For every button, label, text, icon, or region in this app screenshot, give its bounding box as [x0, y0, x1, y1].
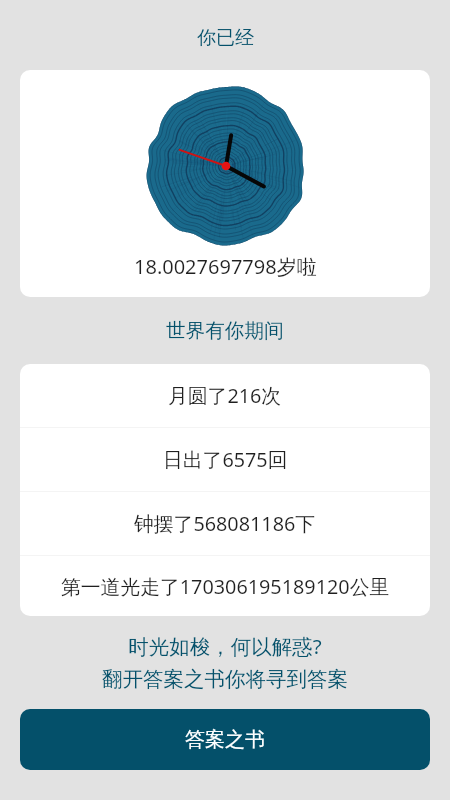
button[interactable]: 日出了6575回	[20, 428, 430, 491]
staticText: 答案之书	[185, 727, 265, 752]
staticText: 时光如梭，何以解惑? 翻开答案之书你将寻到答案	[102, 632, 348, 692]
other: 年轮时钟	[146, 86, 306, 246]
button[interactable]: 第一道光走了170306195189120公里	[20, 556, 430, 616]
staticText: 日出了6575回	[163, 446, 288, 473]
staticText: 世界有你期间	[166, 318, 284, 342]
staticText: 你已经	[197, 26, 254, 50]
staticText: 18.0027697798岁啦	[134, 253, 317, 280]
staticText: 第一道光走了170306195189120公里	[61, 573, 390, 600]
button[interactable]: 月圆了216次	[20, 364, 430, 427]
staticText: 月圆了216次	[168, 382, 282, 409]
staticText: 钟摆了568081186下	[134, 510, 316, 537]
button[interactable]: 答案之书	[20, 709, 430, 770]
button[interactable]: 年轮时钟	[20, 70, 430, 297]
button[interactable]: 钟摆了568081186下	[20, 492, 430, 555]
